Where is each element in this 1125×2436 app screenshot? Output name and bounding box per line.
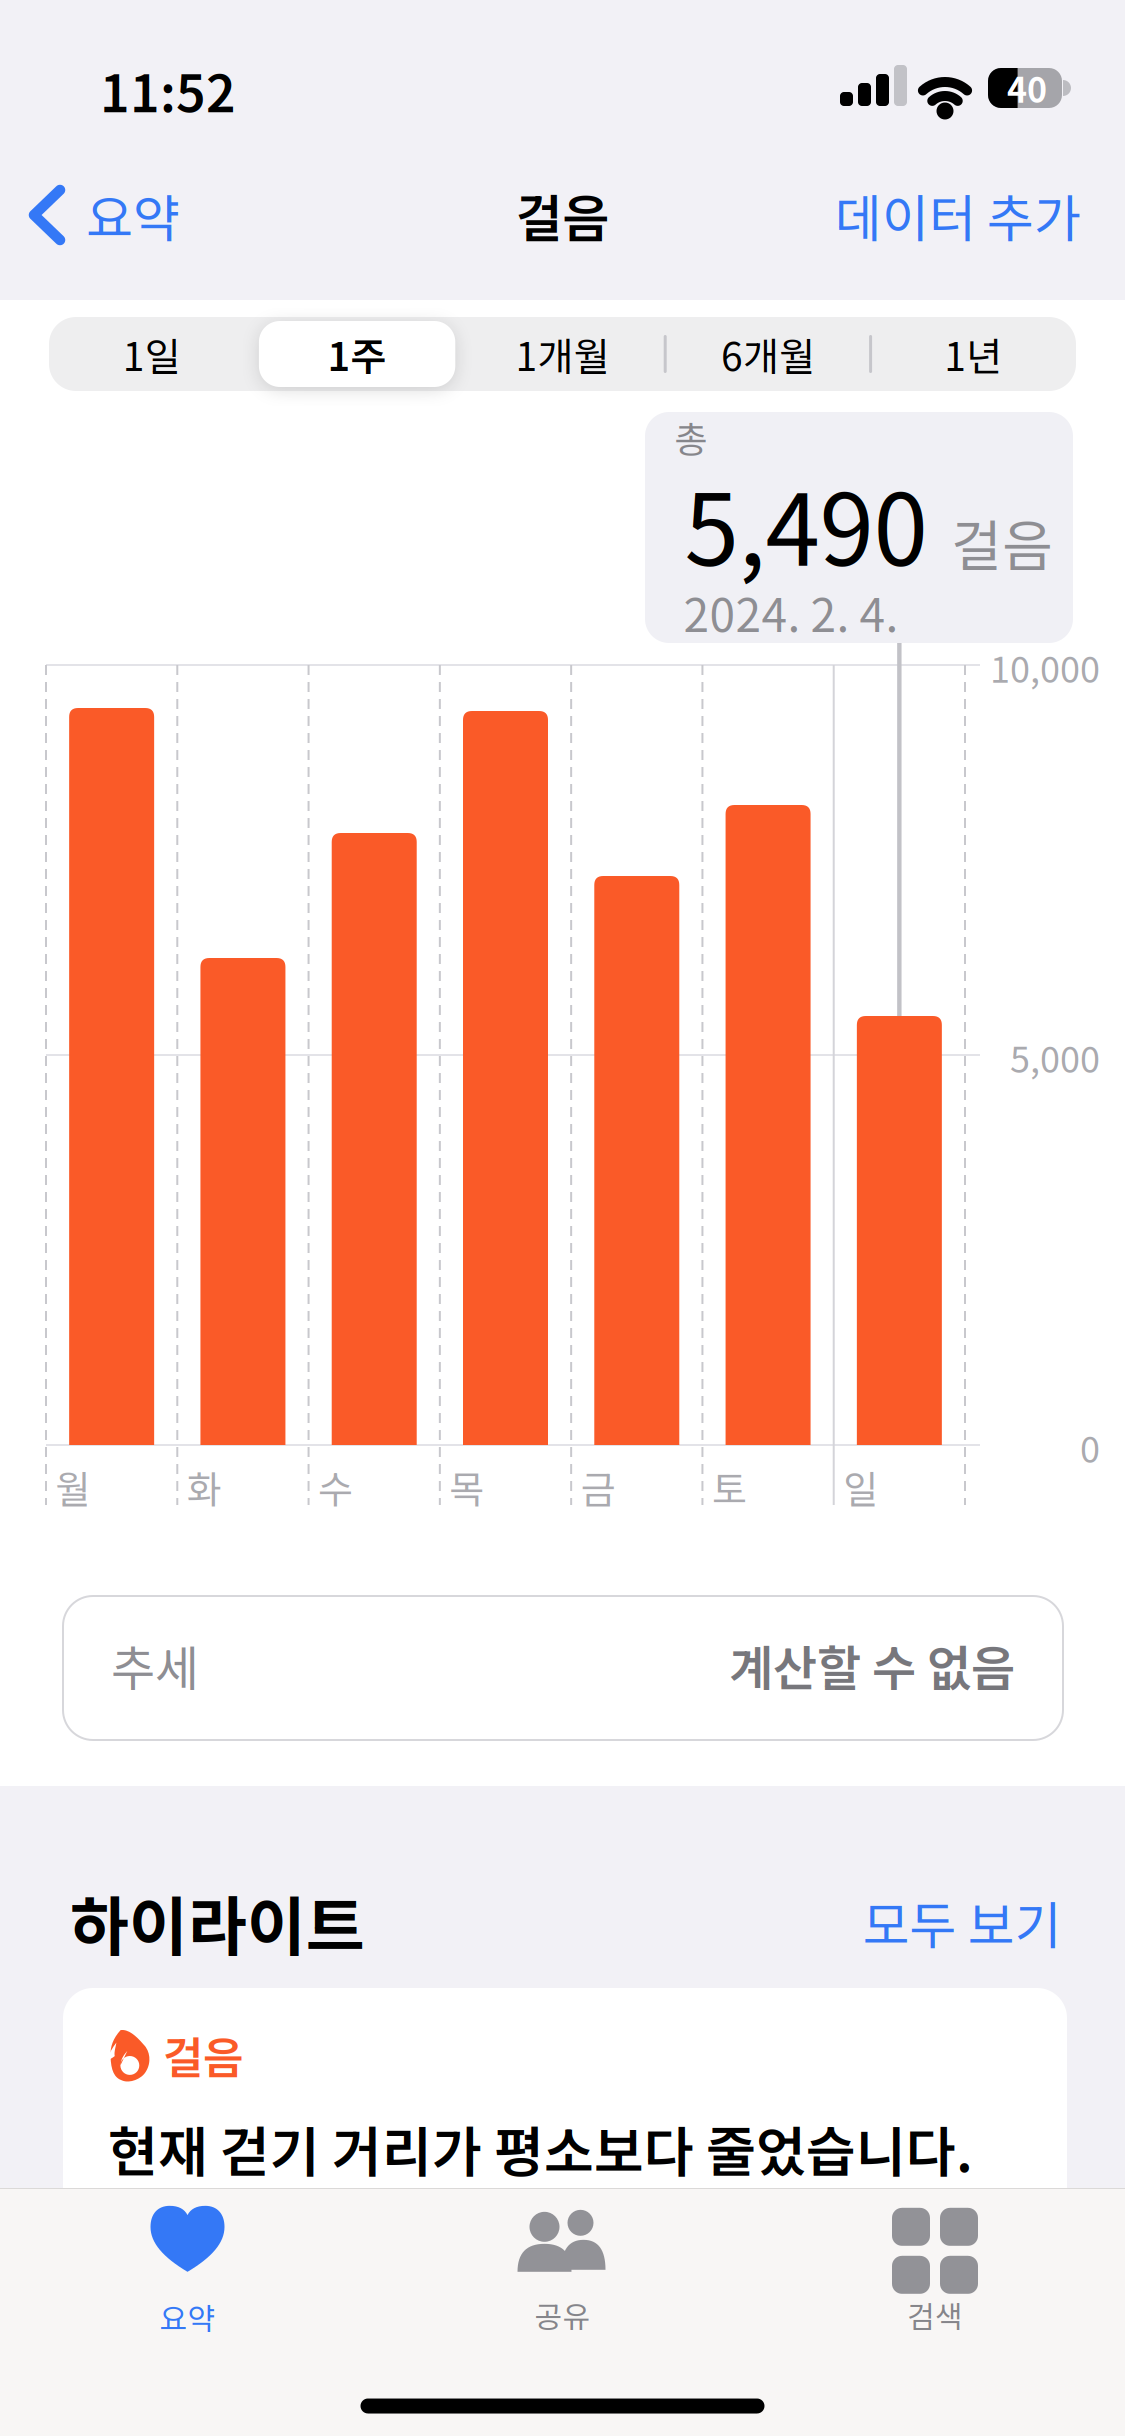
staticText: 걸음 bbox=[515, 179, 609, 251]
button[interactable]: 걸음 bbox=[63, 1988, 1067, 2252]
staticText: 5,490 bbox=[684, 454, 927, 592]
staticText: 데이터 추가 bbox=[835, 179, 1081, 251]
staticText: 2024. 2. 4. bbox=[683, 579, 898, 644]
staticText: 목 bbox=[449, 1460, 484, 1514]
staticText: 11:52 bbox=[100, 54, 236, 126]
staticText: 총 bbox=[674, 412, 707, 462]
staticText: 공유 bbox=[534, 2294, 590, 2336]
staticText: 하이라이트 bbox=[70, 1877, 365, 1967]
button[interactable]: 1개월 bbox=[465, 319, 660, 389]
staticText: 요약 bbox=[86, 179, 180, 251]
button[interactable]: 데이터 추가 bbox=[835, 179, 1081, 251]
staticText: 화 bbox=[187, 1460, 222, 1514]
staticText: 요약 bbox=[159, 2296, 215, 2338]
staticText: 1일 bbox=[123, 326, 181, 382]
staticText: 계산할 수 없음 bbox=[729, 1631, 1015, 1699]
button[interactable]: 1일 bbox=[54, 319, 249, 389]
button[interactable]: 요약 bbox=[77, 2197, 297, 2347]
staticText: 0 bbox=[1080, 1422, 1100, 1472]
staticText: 1주 bbox=[328, 326, 387, 382]
staticText: 일 bbox=[843, 1460, 878, 1514]
staticText: 1개월 bbox=[515, 326, 609, 382]
button[interactable]: 1년 bbox=[876, 319, 1071, 389]
button[interactable]: 공유 bbox=[452, 2197, 672, 2347]
staticText: 5,000 bbox=[1010, 1032, 1100, 1082]
button[interactable]: 1주 bbox=[259, 319, 455, 389]
staticText: 검색 bbox=[907, 2294, 963, 2336]
staticText: 금 bbox=[581, 1460, 616, 1514]
staticText: 추세 bbox=[111, 1631, 199, 1699]
button[interactable]: 6개월 bbox=[670, 319, 866, 389]
button[interactable]: 뒤로 bbox=[30, 179, 180, 251]
staticText: 10,000 bbox=[990, 642, 1100, 692]
staticText: 6개월 bbox=[721, 326, 815, 382]
button[interactable]: 모두 보기 bbox=[862, 1886, 1061, 1958]
staticText: 토 bbox=[712, 1460, 747, 1514]
staticText: 40 bbox=[1007, 64, 1047, 112]
staticText: 걸음 bbox=[163, 2024, 243, 2086]
staticText: 1년 bbox=[944, 326, 1002, 382]
staticText: 수 bbox=[318, 1460, 353, 1514]
staticText: 월 bbox=[55, 1460, 90, 1514]
staticText: 걸음 bbox=[951, 503, 1053, 581]
staticText: 현재 걷기 거리가 평소보다 줄었습니다. bbox=[108, 2110, 973, 2186]
button[interactable]: 검색 bbox=[825, 2197, 1045, 2347]
staticText: 모두 보기 bbox=[862, 1886, 1061, 1958]
